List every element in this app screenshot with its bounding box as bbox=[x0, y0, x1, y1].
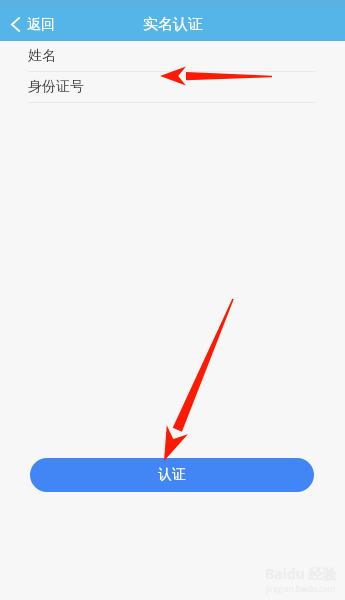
staticText: 返回 bbox=[27, 16, 55, 34]
staticText: 实名认证 bbox=[143, 15, 203, 34]
staticText: 身份证号 bbox=[28, 78, 84, 96]
button[interactable]: 姓名 bbox=[0, 41, 345, 72]
button[interactable]: 身份证号 bbox=[0, 72, 345, 103]
staticText: Baidu 经验 bbox=[265, 564, 337, 583]
staticText: 姓名 bbox=[28, 47, 56, 65]
button[interactable]: 返回 bbox=[0, 8, 65, 41]
button[interactable]: 认证 bbox=[30, 458, 314, 492]
staticText: jingyan.baidu.com bbox=[266, 583, 336, 594]
staticText: 认证 bbox=[158, 466, 186, 484]
